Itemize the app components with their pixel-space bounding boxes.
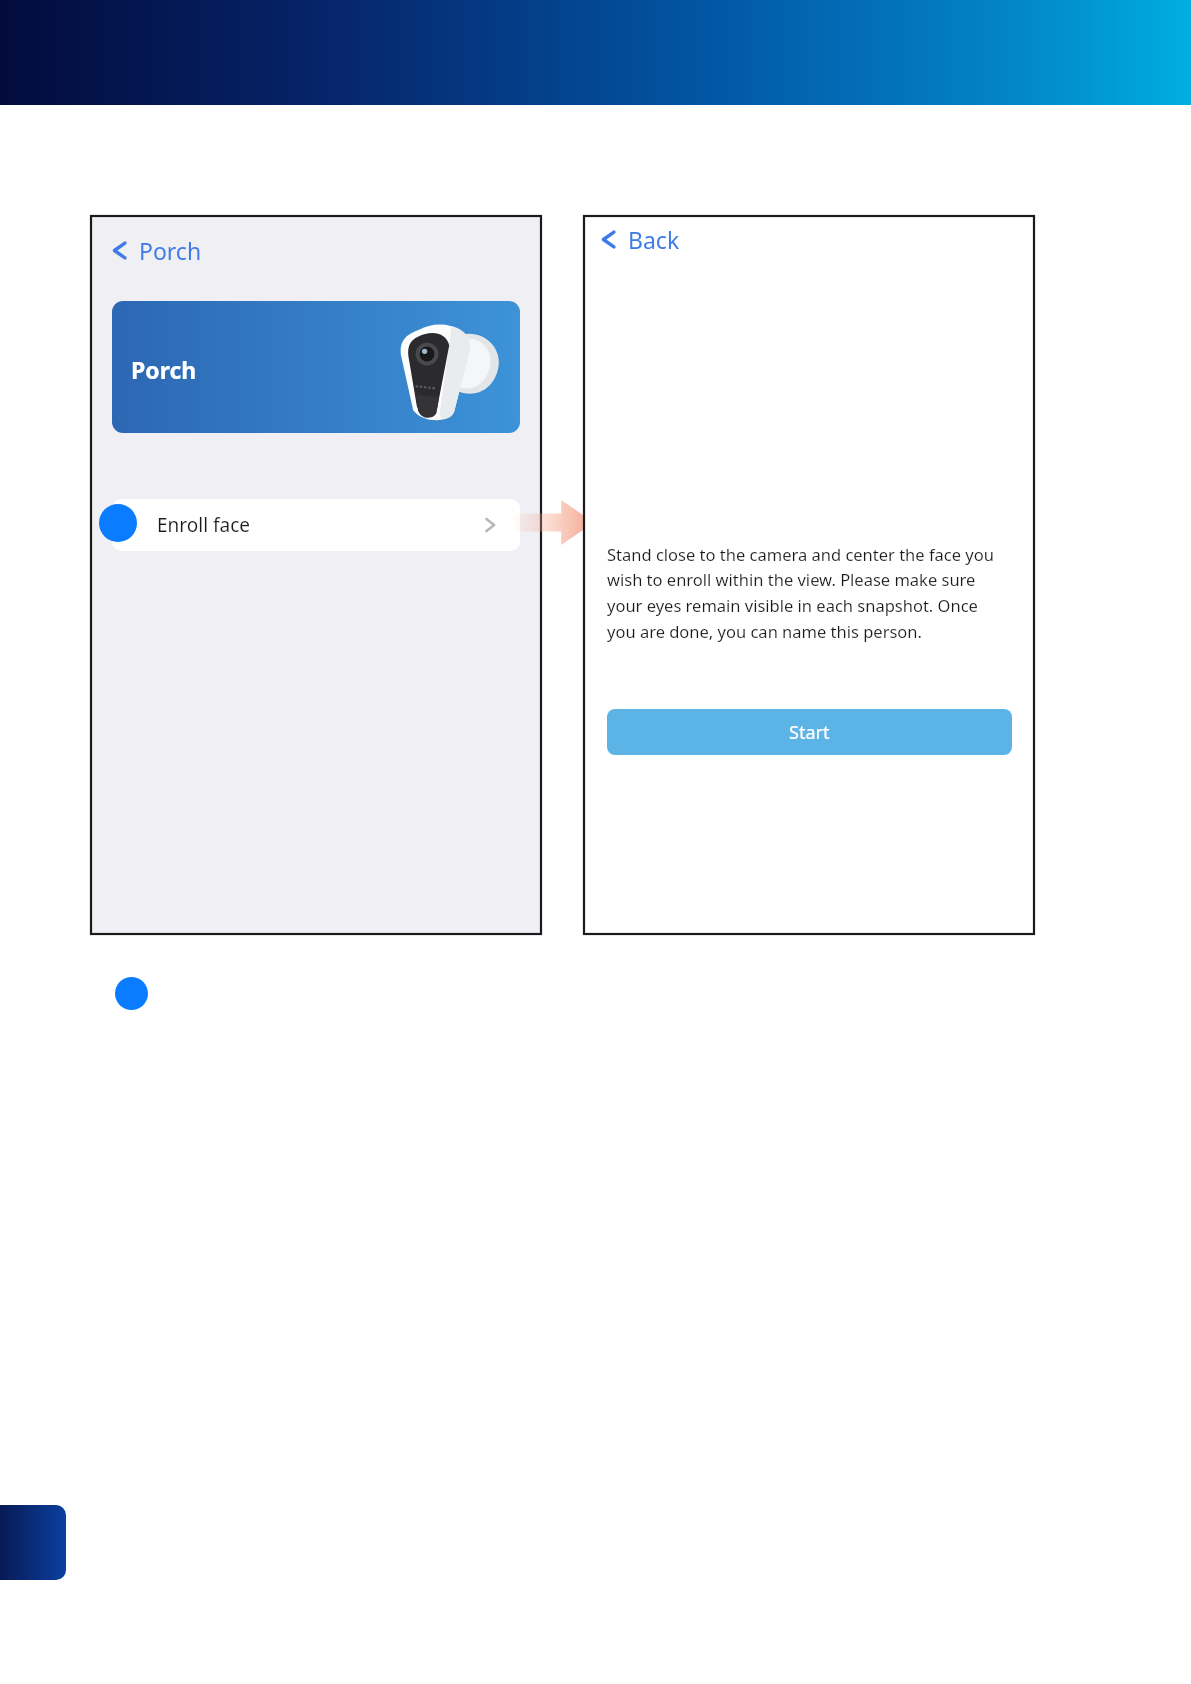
staticText: Enroll face [157, 512, 251, 538]
staticText: Porch [139, 235, 202, 266]
button[interactable]: Enroll face [112, 499, 520, 551]
staticText: Porch [131, 354, 197, 385]
staticText: Stand close to the camera and center the… [607, 543, 1007, 643]
button[interactable]: Start [607, 709, 1012, 755]
button[interactable]: Porch [112, 301, 520, 433]
button[interactable]: Porch [103, 224, 210, 276]
staticText: Back [628, 224, 680, 255]
button[interactable]: Back [592, 216, 688, 262]
staticText: Start [789, 720, 830, 745]
